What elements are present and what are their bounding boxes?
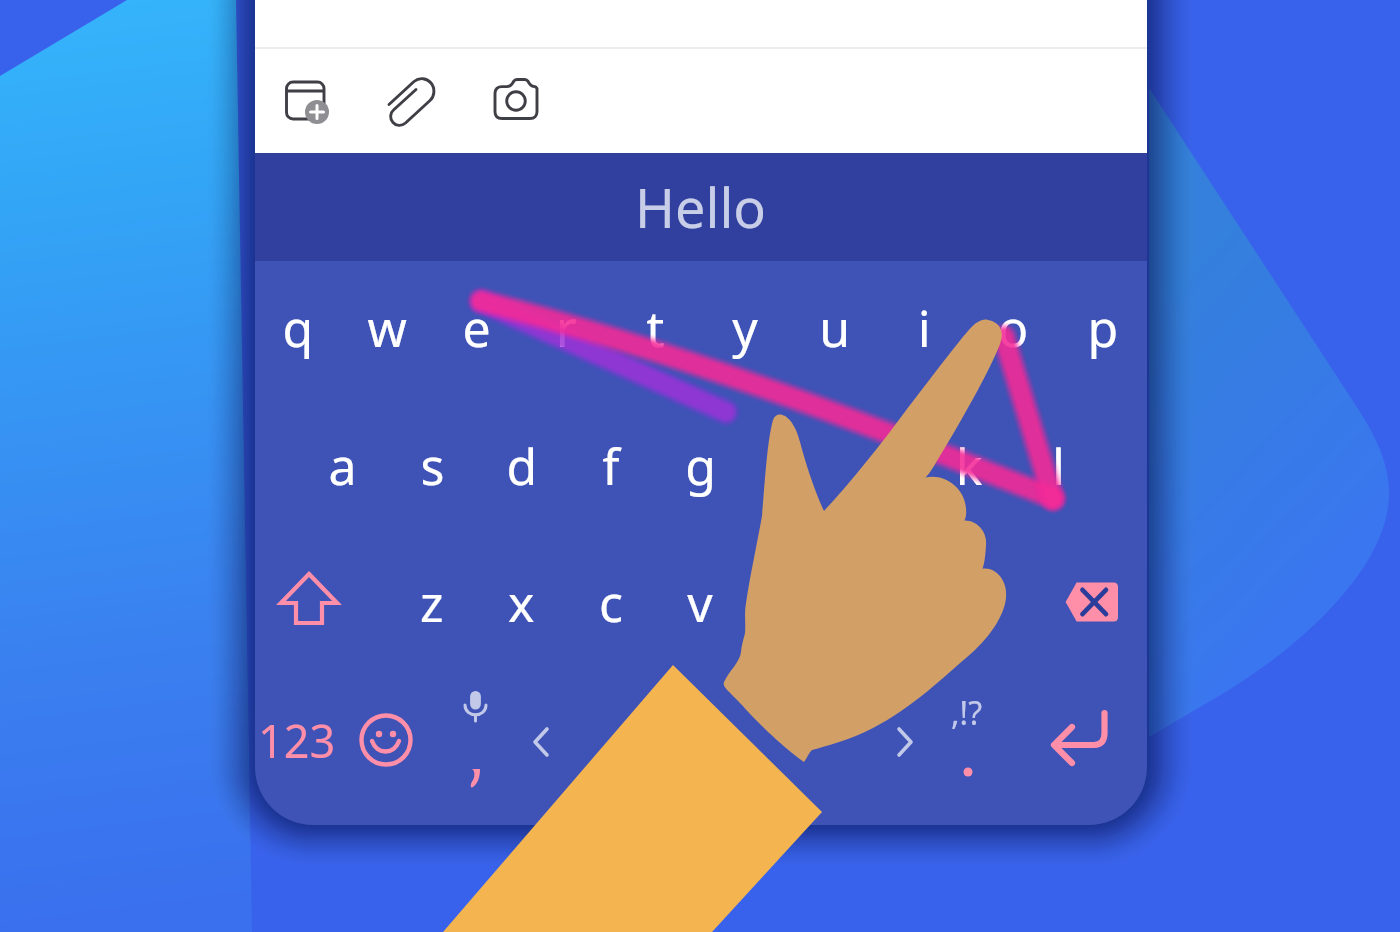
button[interactable]: w: [349, 287, 425, 369]
button[interactable]: Attach file: [382, 72, 440, 130]
button[interactable]: b: [752, 562, 828, 644]
button[interactable]: Camera: [486, 72, 544, 130]
button[interactable]: o: [976, 287, 1052, 369]
button[interactable]: Backspace: [1054, 562, 1130, 644]
button[interactable]: 123: [259, 700, 335, 782]
button[interactable]: Voice input: [437, 700, 513, 782]
button[interactable]: f: [573, 425, 649, 507]
button[interactable]: Add sticker: [277, 72, 335, 130]
button[interactable]: Emoji: [348, 700, 424, 782]
button[interactable]: m: [931, 562, 1007, 644]
button[interactable]: g: [663, 425, 739, 507]
button[interactable]: l: [1021, 425, 1097, 507]
button[interactable]: Punctuation: [929, 700, 1005, 782]
button[interactable]: x: [483, 562, 559, 644]
button[interactable]: q: [260, 287, 336, 369]
button[interactable]: e: [439, 287, 515, 369]
button[interactable]: k: [931, 425, 1007, 507]
button[interactable]: d: [484, 425, 560, 507]
button[interactable]: r: [528, 287, 604, 369]
button[interactable]: j: [842, 425, 918, 507]
button[interactable]: p: [1065, 287, 1141, 369]
button[interactable]: Hello: [600, 160, 800, 255]
button[interactable]: z: [394, 562, 470, 644]
button[interactable]: t: [618, 287, 694, 369]
button[interactable]: s: [394, 425, 470, 507]
button[interactable]: a: [305, 425, 381, 507]
button[interactable]: Space: [615, 700, 895, 782]
button[interactable]: h: [752, 425, 828, 507]
button[interactable]: c: [573, 562, 649, 644]
button[interactable]: Shift: [271, 562, 347, 644]
button[interactable]: y: [707, 287, 783, 369]
button[interactable]: Previous: [526, 700, 602, 782]
button[interactable]: Enter: [1043, 700, 1131, 782]
button[interactable]: Next: [873, 700, 949, 782]
button[interactable]: i: [886, 287, 962, 369]
button[interactable]: u: [797, 287, 873, 369]
button[interactable]: v: [662, 562, 738, 644]
